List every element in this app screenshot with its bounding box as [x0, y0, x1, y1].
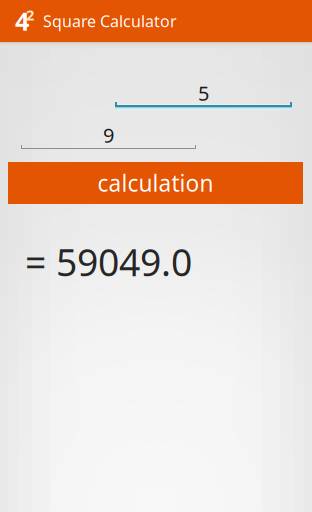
staticText: = 59049.0: [25, 237, 192, 287]
staticText: 5: [198, 80, 209, 106]
button[interactable]: 5: [115, 81, 292, 107]
staticText: calculation: [97, 168, 213, 198]
staticText: Square Calculator: [43, 10, 177, 32]
staticText: 2: [26, 5, 34, 24]
staticText: 4: [15, 4, 29, 38]
button[interactable]: calculation: [8, 162, 303, 204]
staticText: 9: [103, 122, 114, 148]
button[interactable]: 9: [21, 123, 196, 149]
